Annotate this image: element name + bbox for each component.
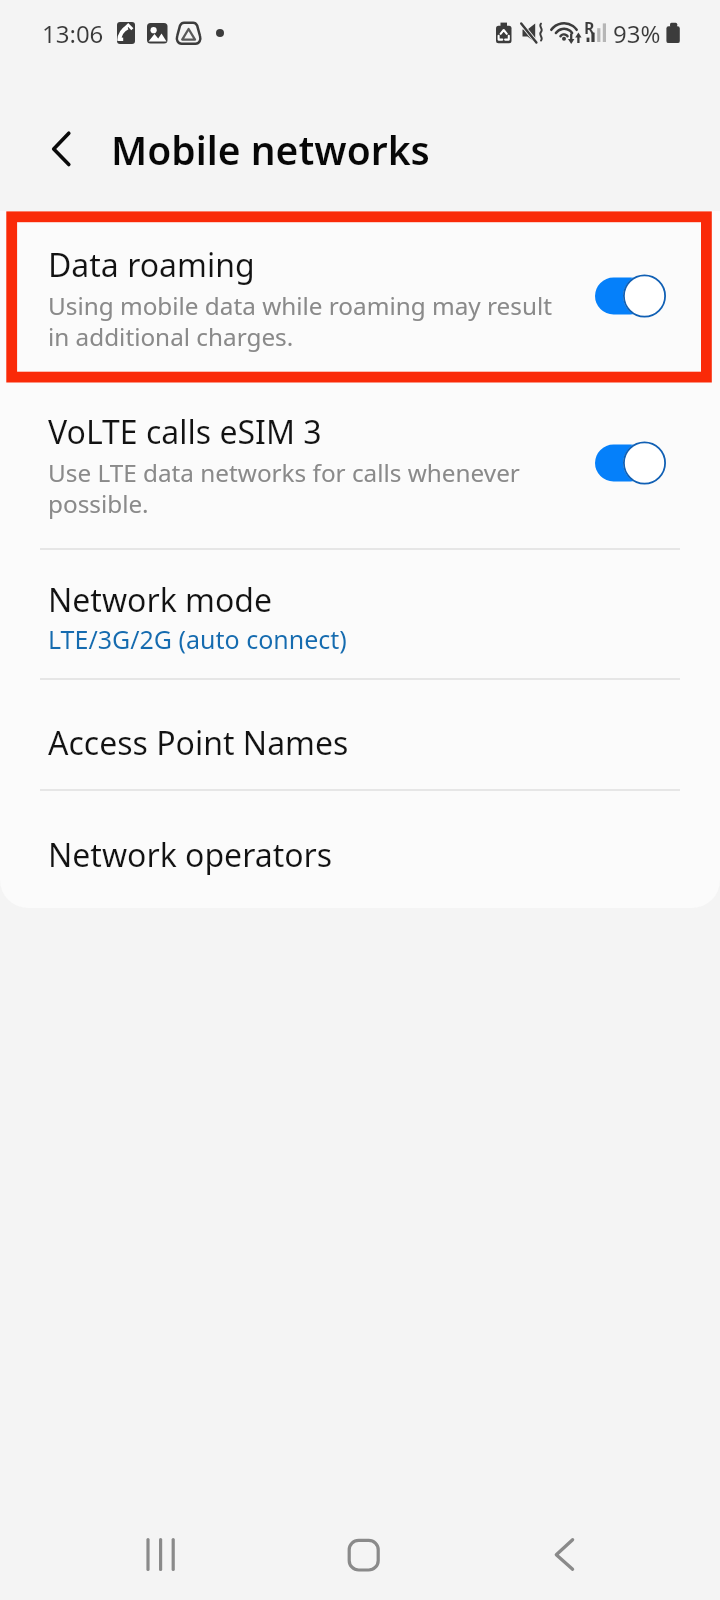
staticText: R <box>584 17 595 39</box>
button[interactable]: Home <box>321 1525 405 1585</box>
staticText: Use LTE data networks for calls whenever… <box>48 456 568 520</box>
button[interactable]: Back <box>522 1525 606 1585</box>
staticText: Data roaming <box>48 243 255 287</box>
staticText: Network operators <box>48 833 333 877</box>
staticText: Mobile networks <box>111 123 430 176</box>
button[interactable]: Back <box>34 120 90 180</box>
staticText: Using mobile data while roaming may resu… <box>48 289 568 353</box>
staticText: LTE/3G/2G (auto connect) <box>48 622 347 656</box>
button[interactable]: VoLTE calls eSIM 3 <box>0 382 720 549</box>
button[interactable]: Access Point Names <box>0 678 720 789</box>
button[interactable]: Network mode <box>0 548 720 678</box>
staticText: 13:06 <box>42 17 104 50</box>
button[interactable]: Toggle Data roaming <box>595 273 667 319</box>
staticText: Access Point Names <box>48 721 349 765</box>
button[interactable]: Recent apps <box>118 1525 202 1585</box>
button[interactable]: Data roaming <box>0 215 720 382</box>
staticText: VoLTE calls eSIM 3 <box>48 410 322 454</box>
button[interactable]: Toggle VoLTE calls eSIM 3 <box>595 440 667 486</box>
staticText: 93% <box>613 17 661 50</box>
staticText: Network mode <box>48 578 273 622</box>
button[interactable]: Network operators <box>0 789 720 901</box>
